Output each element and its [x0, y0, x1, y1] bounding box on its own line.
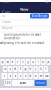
button[interactable]: o [41, 59, 46, 65]
staticText: g [24, 67, 26, 71]
button[interactable]: q [0, 59, 5, 65]
staticText: Subject: [2, 26, 13, 30]
staticText: m [40, 74, 42, 78]
button[interactable]: j [33, 66, 38, 72]
staticText: x [15, 74, 16, 78]
button[interactable]: a [3, 66, 7, 72]
button[interactable]: return [35, 80, 47, 86]
button[interactable]: z [8, 73, 12, 79]
button[interactable]: h [28, 66, 33, 72]
staticText: return [36, 81, 45, 85]
staticText: Lorem ipsum dolor sit amet consectetur [4, 33, 41, 40]
button[interactable]: v [23, 73, 28, 79]
staticText: 9:41 [3, 0, 10, 4]
staticText: adipiscing elit sed do eiusmod. [0, 41, 45, 45]
staticText: y [28, 60, 29, 64]
button[interactable]: k [39, 66, 43, 72]
staticText: To: [2, 14, 6, 18]
staticText: v [25, 74, 26, 78]
button[interactable]: n [33, 73, 38, 79]
button[interactable]: x [13, 73, 17, 79]
staticText: ▮▮▮ [45, 0, 48, 2]
staticText: New Message [20, 6, 33, 22]
staticText: Alex Morgan [31, 14, 47, 18]
staticText: u [32, 60, 34, 64]
staticText: l [45, 67, 46, 71]
staticText: ⌫ [45, 74, 49, 77]
button[interactable]: t [21, 59, 25, 65]
button[interactable]: s [8, 66, 12, 72]
staticText: b [30, 74, 32, 78]
staticText: z [10, 74, 11, 78]
staticText: k [40, 67, 41, 71]
button[interactable]: l [44, 66, 48, 72]
button[interactable]: c [18, 73, 23, 79]
button[interactable]: p [46, 59, 51, 65]
staticText: Cancel [2, 9, 12, 20]
staticText: c [20, 74, 21, 78]
staticText: 123 [5, 81, 11, 85]
staticText: n [35, 74, 37, 78]
button[interactable]: g [23, 66, 28, 72]
button[interactable]: d [13, 66, 17, 72]
button[interactable]: b [28, 73, 33, 79]
button[interactable]: y [26, 59, 30, 65]
staticText: d [14, 67, 16, 71]
button[interactable]: i [36, 59, 40, 65]
staticText: f [20, 67, 21, 71]
staticText: Cc/Bcc: [2, 20, 11, 24]
staticText: i [38, 60, 39, 64]
staticText: h [30, 67, 32, 71]
button[interactable]: space [12, 80, 34, 86]
staticText: e [12, 60, 14, 64]
button[interactable]: u [31, 59, 35, 65]
button[interactable]: f [18, 66, 23, 72]
staticText: s [10, 67, 11, 71]
staticText: j [35, 67, 36, 71]
button[interactable]: w [5, 59, 10, 65]
button[interactable]: m [39, 73, 43, 79]
button[interactable]: ⌫ [44, 73, 50, 79]
staticText: a [5, 67, 6, 71]
staticText: space [19, 81, 26, 85]
staticText: ⇧ [3, 74, 5, 77]
staticText: Send [41, 12, 49, 17]
staticText: r [17, 60, 18, 64]
button[interactable]: e [11, 59, 15, 65]
staticText: q [2, 60, 4, 64]
button[interactable]: ⇧ [1, 73, 7, 79]
staticText: t [22, 60, 23, 64]
staticText: p [47, 60, 49, 64]
staticText: w [7, 60, 9, 64]
button[interactable]: 123 [4, 80, 11, 86]
staticText: o [42, 60, 44, 64]
button[interactable]: r [16, 59, 20, 65]
